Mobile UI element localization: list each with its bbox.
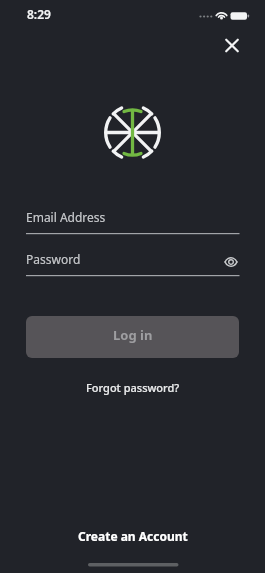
staticText: Password <box>26 251 81 267</box>
button[interactable]: Create an Account <box>72 525 194 547</box>
button[interactable]: Log in <box>26 316 239 358</box>
staticText: Create an Account <box>78 528 188 544</box>
button[interactable]: Password <box>26 246 240 277</box>
staticText: Forgot password? <box>86 380 180 395</box>
staticText: 8:29 <box>27 6 51 22</box>
staticText: Log in <box>113 326 153 344</box>
button[interactable]: Email Address <box>26 204 240 235</box>
button[interactable] <box>219 32 245 58</box>
staticText: Email Address <box>26 209 106 225</box>
button[interactable]: Forgot password? <box>80 377 186 398</box>
